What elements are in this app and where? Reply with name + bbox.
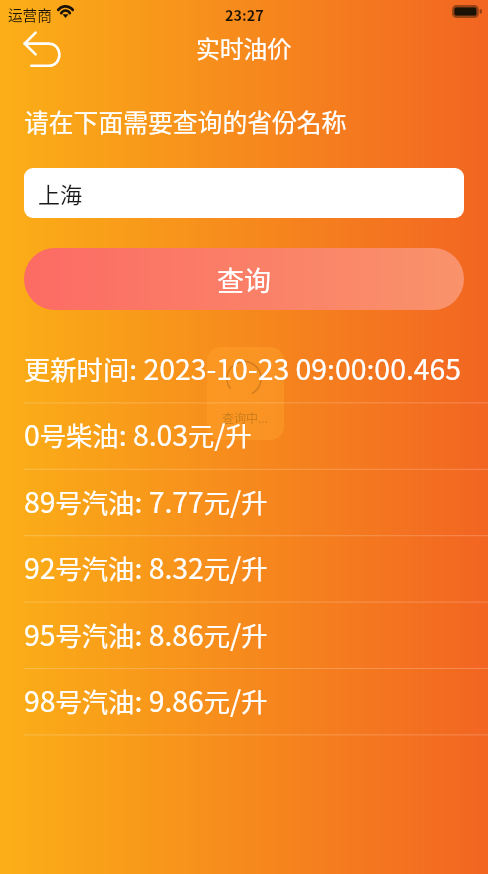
button[interactable]: 95号汽油: 8.86元/升 xyxy=(0,602,488,668)
button[interactable]: 更新时间: 2023-10-23 09:00:00.465 xyxy=(0,336,488,402)
staticText: 更新时间: 2023-10-23 09:00:00.465 xyxy=(24,347,462,388)
staticText: 实时油价 xyxy=(196,30,292,64)
staticText: 上海 xyxy=(38,177,83,209)
button[interactable]: 98号汽油: 9.86元/升 xyxy=(0,668,488,734)
staticText: 查询中... xyxy=(222,409,269,426)
button[interactable]: 0号柴油: 8.03元/升 xyxy=(0,402,488,468)
button[interactable]: Back xyxy=(12,26,62,72)
staticText: 95号汽油: 8.86元/升 xyxy=(24,613,268,654)
staticText: 运营商 xyxy=(8,4,52,25)
button[interactable]: 89号汽油: 7.77元/升 xyxy=(0,469,488,535)
button[interactable]: 上海 xyxy=(24,168,464,218)
staticText: 请在下面需要查询的省份名称 xyxy=(24,103,347,139)
button[interactable]: 查询 xyxy=(24,248,464,310)
staticText: 98号汽油: 9.86元/升 xyxy=(24,679,268,720)
button[interactable]: 92号汽油: 8.32元/升 xyxy=(0,535,488,601)
staticText: 查询 xyxy=(217,260,271,299)
staticText: 0号柴油: 8.03元/升 xyxy=(24,413,252,454)
staticText: 92号汽油: 8.32元/升 xyxy=(24,546,268,587)
staticText: 89号汽油: 7.77元/升 xyxy=(24,480,268,521)
staticText: 23:27 xyxy=(225,4,264,25)
